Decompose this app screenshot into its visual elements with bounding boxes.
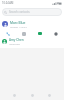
staticText: Yesterday <box>9 42 20 45</box>
button[interactable]: Marc Blue <box>2 18 62 29</box>
staticText: Marc Blue <box>10 20 26 24</box>
staticText: Search contacts <box>9 10 30 14</box>
button[interactable]: Message <box>20 30 27 37</box>
staticText: Amy Chen <box>9 38 24 42</box>
button[interactable]: Amy Chen <box>2 37 62 46</box>
button[interactable]: Video call <box>36 30 43 37</box>
button[interactable]: Back <box>12 93 17 98</box>
staticText: 10:24 AM <box>2 1 14 5</box>
button[interactable]: More options <box>52 30 59 37</box>
button[interactable]: Home <box>30 93 35 98</box>
button[interactable]: Search contacts <box>4 8 60 16</box>
button[interactable]: Call <box>4 30 11 37</box>
staticText: Mobile • 10:24 <box>10 25 27 28</box>
button[interactable]: Recents <box>47 93 52 98</box>
